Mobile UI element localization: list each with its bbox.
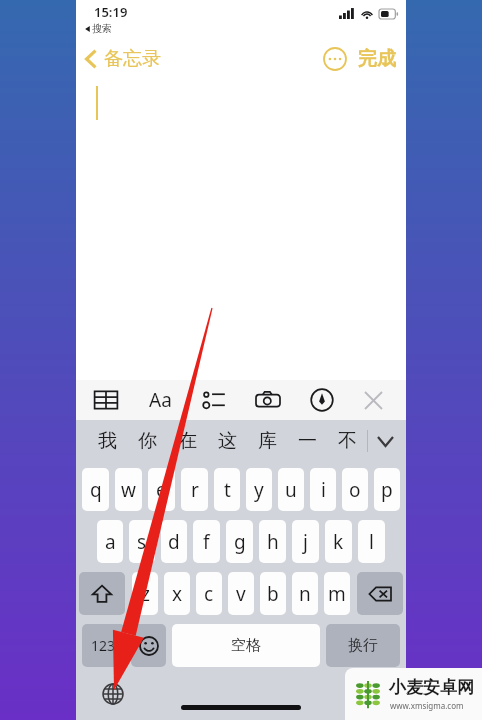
staticText: u [285,477,297,503]
button[interactable]: n [292,572,318,615]
button[interactable]: 库 [247,429,287,453]
button[interactable]: 空格 [172,624,320,667]
staticText: 123 [91,636,116,655]
staticText: 这 [218,429,237,453]
staticText: s [137,529,147,555]
staticText: 小麦安卓网 [389,677,474,698]
button[interactable]: 不 [327,429,367,453]
staticText: z [141,581,150,607]
button[interactable]: More options [322,46,348,72]
button[interactable]: p [374,468,400,511]
button[interactable]: i [310,468,336,511]
button[interactable]: k [325,520,352,563]
staticText: 15:19 [94,3,128,21]
button[interactable]: h [259,520,286,563]
button[interactable]: s [129,520,155,563]
button[interactable]: Markup [306,384,338,416]
button[interactable]: Hide suggestions [368,420,402,462]
button[interactable]: Aa [144,384,176,416]
staticText: 换行 [348,636,378,655]
staticText: h [267,529,279,555]
button[interactable]: Checklist [198,384,230,416]
staticText: e [156,477,167,503]
staticText: g [234,529,246,555]
staticText: 我 [98,429,117,453]
button[interactable]: Table [90,384,122,416]
staticText: 搜索 [92,22,112,35]
button[interactable]: Switch keyboard [98,679,128,709]
button[interactable]: 完成 [358,47,396,71]
button[interactable]: Close [358,385,388,415]
button[interactable]: Backspace [357,572,403,615]
staticText: k [333,529,344,555]
staticText: 在 [178,429,197,453]
staticText: p [381,477,393,503]
button[interactable]: f [193,520,220,563]
staticText: 不 [338,429,357,453]
button[interactable]: c [196,572,222,615]
button[interactable]: 我 [88,429,127,453]
button[interactable]: j [292,520,319,563]
staticText: v [236,581,246,607]
staticText: x [172,581,183,607]
button[interactable]: 备忘录 [84,47,161,71]
button[interactable]: z [132,572,158,615]
staticText: n [299,581,311,607]
button[interactable]: Camera [252,384,284,416]
button[interactable]: x [164,572,190,615]
staticText: d [168,529,180,555]
staticText: b [267,581,279,607]
staticText: 空格 [231,636,261,655]
staticText: l [369,529,374,555]
button[interactable]: l [358,520,385,563]
button[interactable]: 你 [127,429,167,453]
staticText: Aa [149,387,172,413]
staticText: 你 [138,429,157,453]
button[interactable]: u [278,468,304,511]
button[interactable]: q [82,468,109,511]
staticText: f [203,529,210,555]
staticText: 完成 [358,47,396,71]
button[interactable]: r [181,468,208,511]
staticText: m [328,581,346,607]
staticText: j [303,529,308,555]
button[interactable]: g [226,520,253,563]
button[interactable]: Emoji [131,624,166,667]
button[interactable]: t [214,468,240,511]
button[interactable]: a [97,520,123,563]
staticText: r [191,477,199,503]
button[interactable]: e [148,468,175,511]
staticText: i [321,477,326,503]
staticText: q [90,477,102,503]
button[interactable]: Shift [79,572,125,615]
staticText: 库 [258,429,277,453]
staticText: www.xmsigma.com [390,700,464,711]
button[interactable]: 一 [287,429,327,453]
button[interactable]: o [342,468,368,511]
button[interactable]: w [115,468,142,511]
button[interactable]: d [161,520,187,563]
button[interactable]: 这 [207,429,247,453]
staticText: a [105,529,116,555]
button[interactable]: 换行 [326,624,400,667]
staticText: 备忘录 [104,47,161,71]
button[interactable]: b [260,572,286,615]
button[interactable]: m [324,572,350,615]
staticText: w [121,477,136,503]
staticText: c [204,581,214,607]
staticText: y [254,477,264,503]
staticText: o [349,477,361,503]
staticText: t [224,477,231,503]
button[interactable]: 在 [167,429,207,453]
button[interactable]: y [246,468,272,511]
button[interactable]: v [228,572,254,615]
button[interactable]: 123 [82,624,125,667]
staticText: 一 [298,429,317,453]
